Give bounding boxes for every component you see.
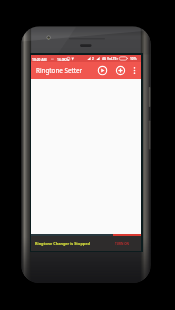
staticText: 16.0K/s	[57, 57, 69, 61]
button[interactable]: Add ringtone	[114, 64, 127, 77]
button[interactable]: More options	[129, 65, 140, 76]
staticText: Ringtone Changer is Stopped	[35, 241, 90, 246]
button[interactable]: Ringtone Changer is Stopped	[31, 236, 141, 251]
staticText: 4G VoLTE	[102, 57, 117, 61]
staticText: 10:20 AM	[32, 57, 47, 61]
staticText: 10%	[130, 57, 137, 61]
button[interactable]: Play	[96, 64, 109, 77]
staticText: TURN ON	[115, 242, 129, 246]
staticText: 2	[92, 57, 94, 61]
staticText: Ringtone Setter	[36, 66, 83, 75]
